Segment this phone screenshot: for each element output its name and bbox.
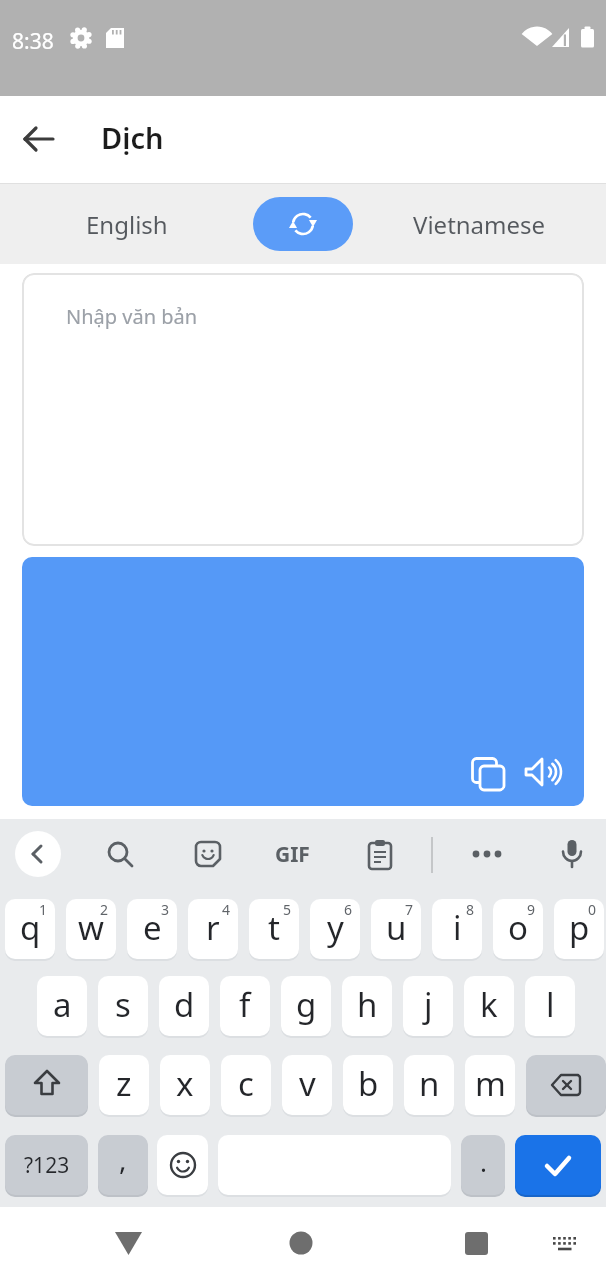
staticText: English <box>86 208 168 241</box>
button[interactable]: d <box>159 976 209 1036</box>
button[interactable]: s <box>98 976 148 1036</box>
button[interactable] <box>526 1055 606 1115</box>
staticText: . <box>480 1144 487 1179</box>
staticText: a <box>53 982 72 1027</box>
staticText: x <box>176 1061 194 1106</box>
button[interactable]: t <box>249 899 299 959</box>
button[interactable]: a <box>37 976 87 1036</box>
staticText: m <box>475 1061 506 1106</box>
button[interactable]: n <box>404 1055 454 1115</box>
button[interactable] <box>15 831 61 877</box>
staticText: 8 <box>466 900 475 919</box>
staticText: l <box>546 982 555 1027</box>
button[interactable] <box>463 830 511 878</box>
button[interactable]: y <box>310 899 360 959</box>
button[interactable]: ?123 <box>5 1135 88 1195</box>
button[interactable]: j <box>403 976 453 1036</box>
button[interactable] <box>15 115 63 163</box>
button[interactable] <box>157 1135 208 1195</box>
staticText: , <box>119 1140 127 1178</box>
staticText: Dịch <box>101 118 164 157</box>
staticText: z <box>116 1061 132 1106</box>
staticText: y <box>327 905 344 950</box>
staticText: 0 <box>588 900 597 919</box>
staticText: 4 <box>222 900 231 919</box>
staticText: c <box>238 1061 254 1106</box>
staticText: v <box>299 1061 316 1106</box>
staticText: ?123 <box>24 1151 70 1180</box>
staticText: d <box>174 982 195 1027</box>
staticText: b <box>358 1061 379 1106</box>
button[interactable] <box>539 1219 589 1269</box>
staticText: Vietnamese <box>413 208 546 241</box>
staticText: q <box>20 905 41 950</box>
button[interactable]: . <box>461 1135 505 1195</box>
button[interactable]: p <box>554 899 604 959</box>
staticText: h <box>357 982 378 1027</box>
button[interactable] <box>103 1219 153 1269</box>
button[interactable] <box>184 830 232 878</box>
button[interactable]: k <box>464 976 514 1036</box>
button[interactable]: Vietnamese <box>353 184 606 264</box>
button[interactable]: u <box>371 899 421 959</box>
button[interactable] <box>522 752 566 796</box>
button[interactable]: i <box>432 899 482 959</box>
button[interactable]: e <box>127 899 177 959</box>
button[interactable]: x <box>160 1055 210 1115</box>
staticText: o <box>508 905 528 950</box>
staticText: u <box>386 905 407 950</box>
button[interactable] <box>515 1135 601 1195</box>
button[interactable] <box>5 1055 88 1115</box>
button[interactable]: h <box>342 976 392 1036</box>
button[interactable]: b <box>343 1055 393 1115</box>
button[interactable]: , <box>98 1135 148 1195</box>
button[interactable]: g <box>281 976 331 1036</box>
staticText: r <box>206 905 220 950</box>
staticText: 8:38 <box>12 27 54 56</box>
staticText: 5 <box>283 900 292 919</box>
button[interactable] <box>253 197 353 251</box>
button[interactable]: GIF <box>268 830 316 878</box>
staticText: f <box>239 982 251 1027</box>
staticText: w <box>78 905 104 950</box>
button[interactable]: l <box>525 976 575 1036</box>
button[interactable] <box>276 1219 326 1269</box>
button[interactable] <box>548 830 596 878</box>
staticText: n <box>419 1061 440 1106</box>
button[interactable]: m <box>465 1055 515 1115</box>
button[interactable]: Nhập văn bản <box>22 273 584 546</box>
button[interactable] <box>451 1219 501 1269</box>
button[interactable]: q <box>5 899 55 959</box>
staticText: s <box>115 982 131 1027</box>
staticText: i <box>453 905 462 950</box>
button[interactable]: z <box>99 1055 149 1115</box>
staticText: 2 <box>100 900 109 919</box>
staticText: GIF <box>275 840 310 869</box>
staticText: 7 <box>405 900 414 919</box>
button[interactable]: c <box>221 1055 271 1115</box>
staticText: k <box>480 982 498 1027</box>
staticText: t <box>268 905 280 950</box>
staticText: g <box>296 982 317 1027</box>
button[interactable] <box>96 830 144 878</box>
staticText: 9 <box>527 900 536 919</box>
button[interactable]: v <box>282 1055 332 1115</box>
staticText: 3 <box>161 900 170 919</box>
staticText: j <box>424 982 433 1027</box>
button[interactable]: r <box>188 899 238 959</box>
button[interactable]: f <box>220 976 270 1036</box>
button[interactable] <box>466 752 510 796</box>
button[interactable]: English <box>0 184 253 264</box>
button[interactable]: w <box>66 899 116 959</box>
staticText: p <box>569 905 590 950</box>
staticText: 6 <box>344 900 353 919</box>
button[interactable] <box>356 830 404 878</box>
staticText: 1 <box>39 900 48 919</box>
staticText: e <box>143 905 162 950</box>
button[interactable]: o <box>493 899 543 959</box>
staticText: Nhập văn bản <box>66 303 198 330</box>
